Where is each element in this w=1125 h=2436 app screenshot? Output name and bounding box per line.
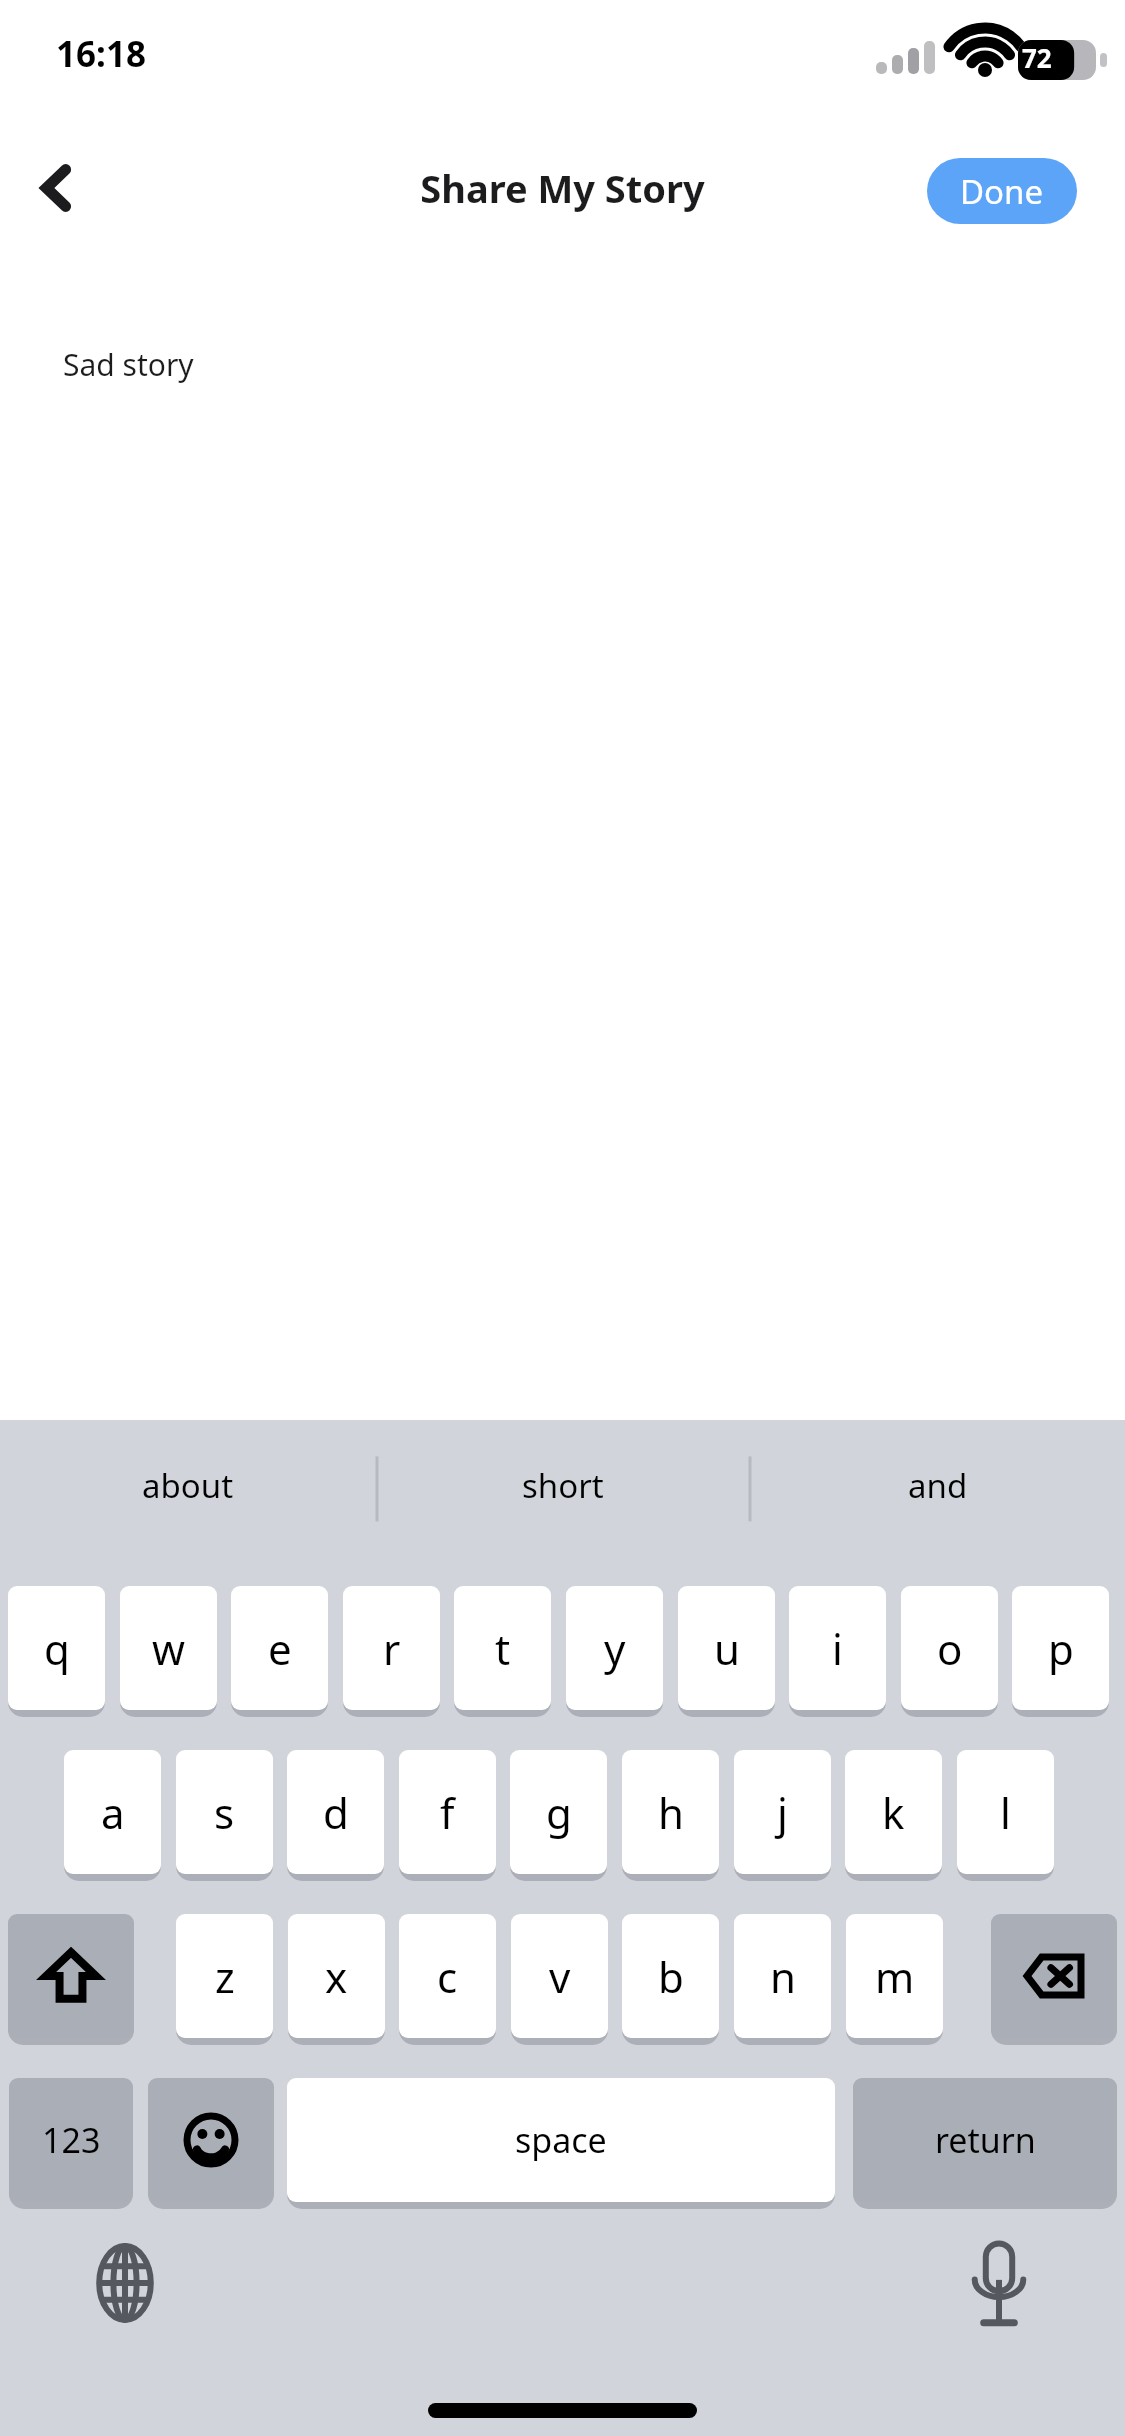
staticText: space xyxy=(515,2117,607,2163)
button[interactable]: t xyxy=(454,1586,551,1710)
button[interactable]: c xyxy=(399,1914,496,2038)
button[interactable]: l xyxy=(957,1750,1054,1874)
button[interactable]: Shift xyxy=(8,1914,134,2038)
button[interactable]: y xyxy=(566,1586,663,1710)
button[interactable]: Done xyxy=(927,158,1077,224)
staticText: 123 xyxy=(42,2117,101,2163)
button[interactable]: w xyxy=(120,1586,217,1710)
button[interactable]: about xyxy=(0,1420,375,1550)
button[interactable]: v xyxy=(511,1914,608,2038)
button[interactable]: Backspace xyxy=(991,1914,1117,2038)
staticText: Share My Story xyxy=(0,162,1125,214)
staticText: e xyxy=(268,1620,292,1677)
staticText: u xyxy=(714,1620,740,1677)
staticText: b xyxy=(658,1948,684,2005)
button[interactable]: j xyxy=(734,1750,831,1874)
staticText: w xyxy=(152,1620,186,1677)
button[interactable]: r xyxy=(343,1586,440,1710)
button[interactable]: Back xyxy=(16,148,96,228)
button[interactable]: q xyxy=(8,1586,105,1710)
button[interactable]: k xyxy=(845,1750,942,1874)
staticText: return xyxy=(935,2117,1036,2163)
staticText: h xyxy=(658,1784,684,1841)
staticText: f xyxy=(440,1784,455,1841)
staticText: j xyxy=(777,1784,788,1841)
staticText: 16:18 xyxy=(56,30,146,78)
button[interactable]: return xyxy=(853,2078,1117,2202)
staticText: Sad story xyxy=(63,344,194,385)
button[interactable]: short xyxy=(375,1420,750,1550)
staticText: z xyxy=(215,1948,235,2005)
button[interactable]: e xyxy=(231,1586,328,1710)
button[interactable]: d xyxy=(287,1750,384,1874)
button[interactable]: Numbers xyxy=(9,2078,133,2202)
staticText: q xyxy=(44,1620,70,1677)
button[interactable]: g xyxy=(510,1750,607,1874)
button[interactable]: o xyxy=(901,1586,998,1710)
staticText: d xyxy=(323,1784,349,1841)
button[interactable]: m xyxy=(846,1914,943,2038)
staticText: x xyxy=(325,1948,348,2005)
staticText: about xyxy=(142,1463,234,1508)
staticText: g xyxy=(546,1784,572,1841)
button[interactable]: Dictation xyxy=(955,2238,1043,2330)
staticText: v xyxy=(549,1948,571,2005)
button[interactable]: a xyxy=(64,1750,161,1874)
button[interactable]: u xyxy=(678,1586,775,1710)
button[interactable]: space xyxy=(287,2078,835,2202)
staticText: m xyxy=(875,1948,915,2005)
staticText: l xyxy=(1000,1784,1011,1841)
button[interactable]: p xyxy=(1012,1586,1109,1710)
staticText: short xyxy=(522,1463,604,1508)
staticText: Done xyxy=(960,169,1044,214)
staticText: r xyxy=(383,1620,401,1677)
staticText: k xyxy=(882,1784,905,1841)
button[interactable]: i xyxy=(789,1586,886,1710)
staticText: y xyxy=(604,1620,626,1677)
staticText: c xyxy=(437,1948,458,2005)
button[interactable]: s xyxy=(176,1750,273,1874)
staticText: t xyxy=(495,1620,511,1677)
button[interactable]: Emoji xyxy=(148,2078,274,2202)
staticText: p xyxy=(1048,1620,1074,1677)
staticText: a xyxy=(101,1784,125,1841)
staticText: i xyxy=(832,1620,843,1677)
button[interactable]: f xyxy=(399,1750,496,1874)
button[interactable]: and xyxy=(750,1420,1125,1550)
staticText: 72 xyxy=(1022,40,1052,75)
staticText: s xyxy=(214,1784,235,1841)
staticText: o xyxy=(937,1620,963,1677)
button[interactable]: z xyxy=(176,1914,273,2038)
staticText: n xyxy=(770,1948,796,2005)
button[interactable]: b xyxy=(622,1914,719,2038)
button[interactable]: x xyxy=(288,1914,385,2038)
button[interactable]: Change keyboard language xyxy=(82,2240,168,2326)
staticText: and xyxy=(908,1463,968,1508)
button[interactable]: h xyxy=(622,1750,719,1874)
button[interactable]: n xyxy=(734,1914,831,2038)
